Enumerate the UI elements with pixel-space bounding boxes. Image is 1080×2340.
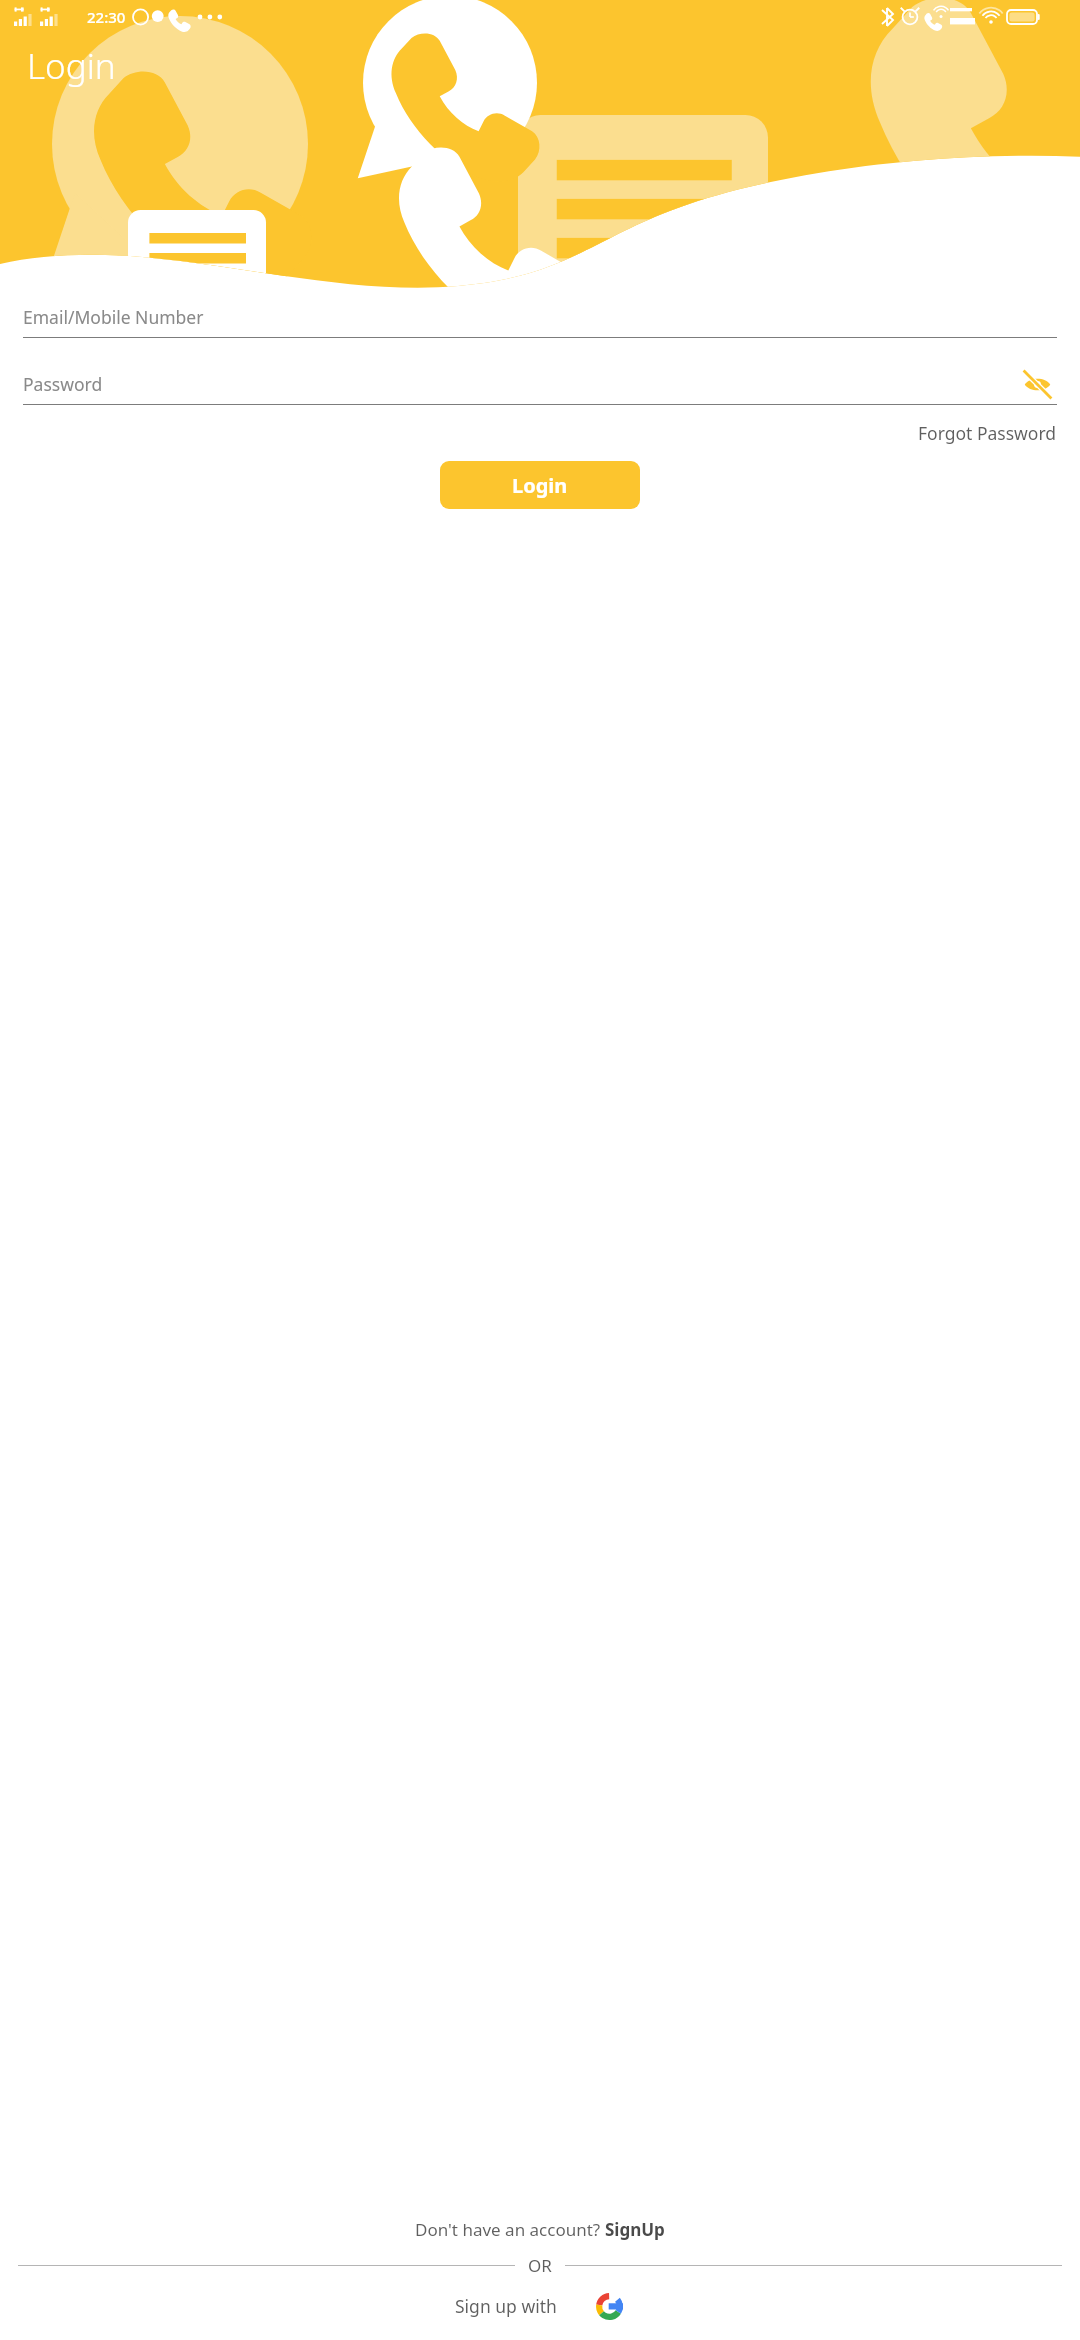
staticText: Don't have an account? (415, 2218, 605, 2241)
staticText: 22:30 (87, 7, 126, 27)
staticText: Login (27, 42, 116, 90)
button[interactable]: Password (23, 364, 1057, 404)
staticText: Password (23, 372, 103, 396)
staticText: Sign up with (455, 2294, 557, 2318)
button[interactable]: Email/Mobile Number (23, 297, 1057, 338)
button[interactable]: Login (440, 461, 640, 509)
staticText: SignUp (605, 2218, 665, 2241)
button[interactable]: Show password (1017, 364, 1057, 404)
staticText: Forgot Password (918, 421, 1057, 445)
button[interactable]: Don't have an account? (0, 2218, 1080, 2241)
button[interactable]: Sign up with Google (593, 2290, 625, 2322)
staticText: OR (528, 2254, 552, 2277)
button[interactable]: Forgot Password (918, 421, 1057, 445)
staticText: Email/Mobile Number (23, 305, 204, 329)
staticText: Login (512, 472, 568, 499)
